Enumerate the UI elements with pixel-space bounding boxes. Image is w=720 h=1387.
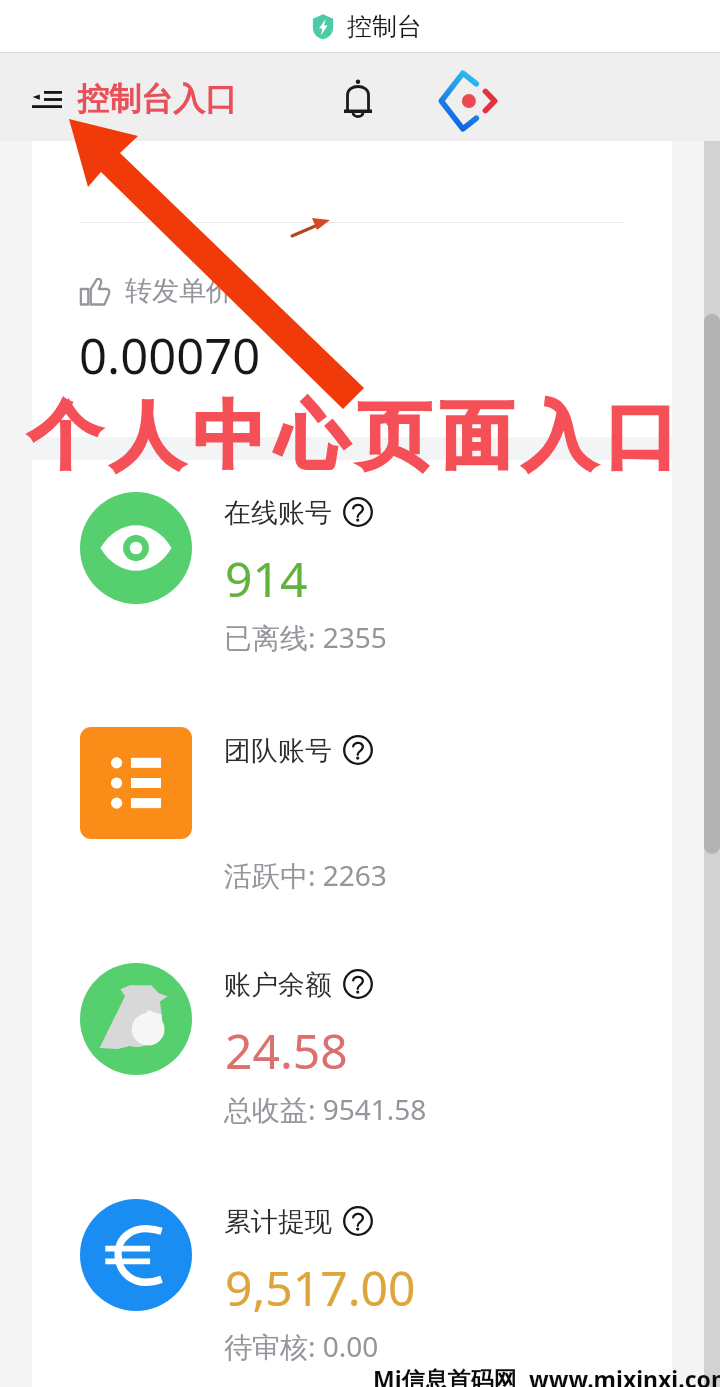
button[interactable]: App logo	[438, 70, 498, 132]
staticText: Mi信息首码网	[373, 1363, 517, 1387]
button[interactable]	[32, 945, 672, 1163]
staticText: 账户余额	[224, 968, 332, 1002]
staticText: 914	[225, 546, 308, 611]
button[interactable]	[32, 474, 672, 692]
button[interactable]: Notifications	[330, 73, 386, 123]
staticText: 24.58	[225, 1018, 348, 1083]
staticText: 转发单价	[125, 274, 233, 308]
staticText: 9,517.00	[225, 1255, 416, 1320]
staticText: 在线账号	[224, 496, 332, 530]
staticText: 活跃中: 2263	[224, 856, 387, 894]
staticText: 总收益: 9541.58	[224, 1090, 427, 1128]
staticText: www.mixinxi.com	[529, 1363, 720, 1387]
button[interactable]: 控制台入口	[76, 76, 236, 120]
button[interactable]	[32, 1181, 672, 1387]
staticText: 0.00070	[79, 322, 261, 389]
staticText: 团队账号	[224, 734, 332, 768]
button[interactable]	[32, 709, 672, 927]
staticText: 累计提现	[224, 1205, 332, 1239]
button[interactable]: Menu	[22, 77, 72, 127]
staticText: 控制台	[347, 11, 422, 42]
staticText: 个人中心页面入口	[28, 391, 688, 483]
staticText: 已离线: 2355	[224, 618, 387, 656]
staticText: 待审核: 0.00	[224, 1327, 379, 1365]
staticText: 控制台入口	[77, 79, 237, 119]
